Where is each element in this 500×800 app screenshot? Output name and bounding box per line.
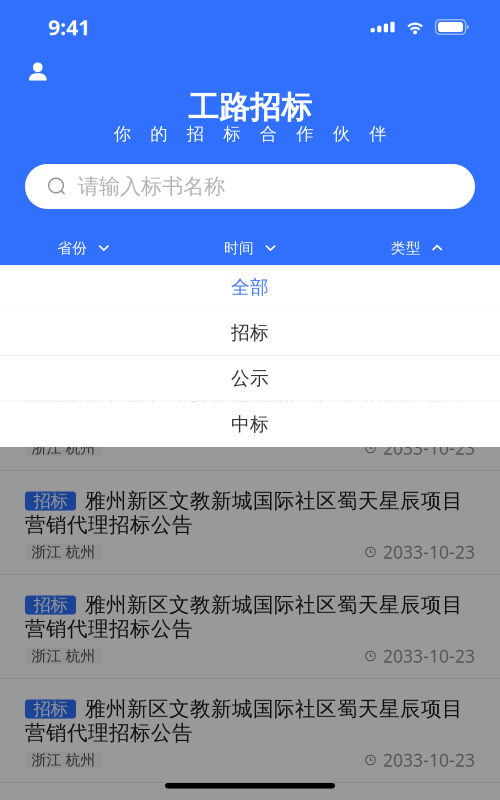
staticText: 2033-10-23 [383,644,475,668]
button[interactable]: 招标 [0,310,500,356]
button[interactable]: 招标 [0,471,500,575]
staticText: 招标 [33,490,67,512]
staticText: 公示 [231,366,269,390]
staticText: 雅州新区文教新城国际社区蜀天星辰项目 [85,592,463,618]
staticText: 类型 [391,239,421,257]
button[interactable]: 中标 [0,401,500,447]
staticText: 省份 [57,239,87,257]
button[interactable]: 招标 [0,575,500,679]
staticText: 雅州新区文教新城国际社区蜀天星辰项目 [85,696,463,722]
staticText: 招标 [33,698,67,720]
staticText: 时间 [224,239,254,257]
button[interactable]: 招标 [0,367,500,471]
staticText: 2033-10-23 [383,436,475,460]
button[interactable]: 公示 [0,356,500,401]
staticText: 请输入标书名称 [78,173,225,200]
staticText: 浙江 杭州 [31,439,95,457]
staticText: 雅州新区文教新城国际社区蜀天星辰项目 [85,384,463,410]
staticText: 浙江 杭州 [31,751,95,769]
staticText: 雅州新区文教新城国际社区蜀天星辰项目 [85,488,463,514]
staticText: 中标 [231,412,269,436]
staticText: 招标 [33,386,67,408]
staticText: 2033-10-23 [383,540,475,564]
staticText: 全部 [231,275,269,299]
staticText: 营销代理招标公告 [25,616,193,642]
button[interactable]: 时间 [167,231,333,265]
staticText: 招标 [33,594,67,616]
staticText: 营销代理招标公告 [25,720,193,746]
staticText: 浙江 杭州 [31,543,95,561]
button[interactable]: 省份 [0,231,167,265]
button[interactable]: 招标 [0,679,500,783]
staticText: 2033-10-23 [383,748,475,772]
button[interactable]: 招标 [0,783,500,800]
staticText: 9:41 [48,12,90,42]
staticText: 你的招标合作伙伴 [114,123,386,145]
staticText: 招标 [231,321,269,344]
staticText: 营销代理招标公告 [25,512,193,538]
button[interactable]: 全部 [0,265,500,310]
staticText: 工路招标 [188,88,312,127]
button[interactable]: 请输入标书名称 [25,164,475,209]
button[interactable]: 类型 [333,231,500,265]
staticText: 浙江 杭州 [31,647,95,665]
button[interactable]: Account [29,62,67,81]
